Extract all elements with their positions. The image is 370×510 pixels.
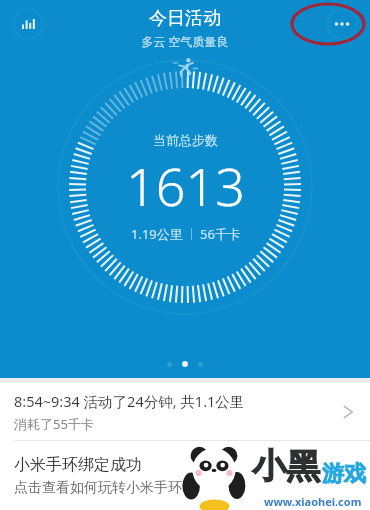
staticText: 今日活动 — [149, 7, 221, 30]
staticText: 小黑 — [252, 445, 320, 488]
staticText: 当前总步数 — [153, 132, 218, 148]
staticText: 56千卡 — [200, 225, 241, 243]
staticText: 消耗了55千卡 — [14, 415, 94, 433]
staticText: 8:54~9:34 活动了24分钟, 共1.1公里 — [14, 391, 245, 411]
button[interactable]: 小米手环绑定成功 — [0, 441, 370, 510]
button[interactable]: More options — [326, 8, 358, 40]
staticText: 多云 空气质量良 — [141, 33, 229, 49]
button[interactable]: Statistics — [12, 8, 44, 40]
staticText: 小米手环绑定成功 — [14, 455, 142, 475]
staticText: 游戏 — [322, 460, 366, 488]
button[interactable]: 8:54~9:34 活动了24分钟, 共1.1公里 — [0, 383, 370, 440]
staticText: 1613 — [126, 150, 245, 221]
staticText: 1.19公里 — [131, 225, 183, 243]
staticText: www.xiaohei.com — [264, 494, 362, 509]
staticText: 点击查看如何玩转小米手环 — [14, 479, 182, 497]
